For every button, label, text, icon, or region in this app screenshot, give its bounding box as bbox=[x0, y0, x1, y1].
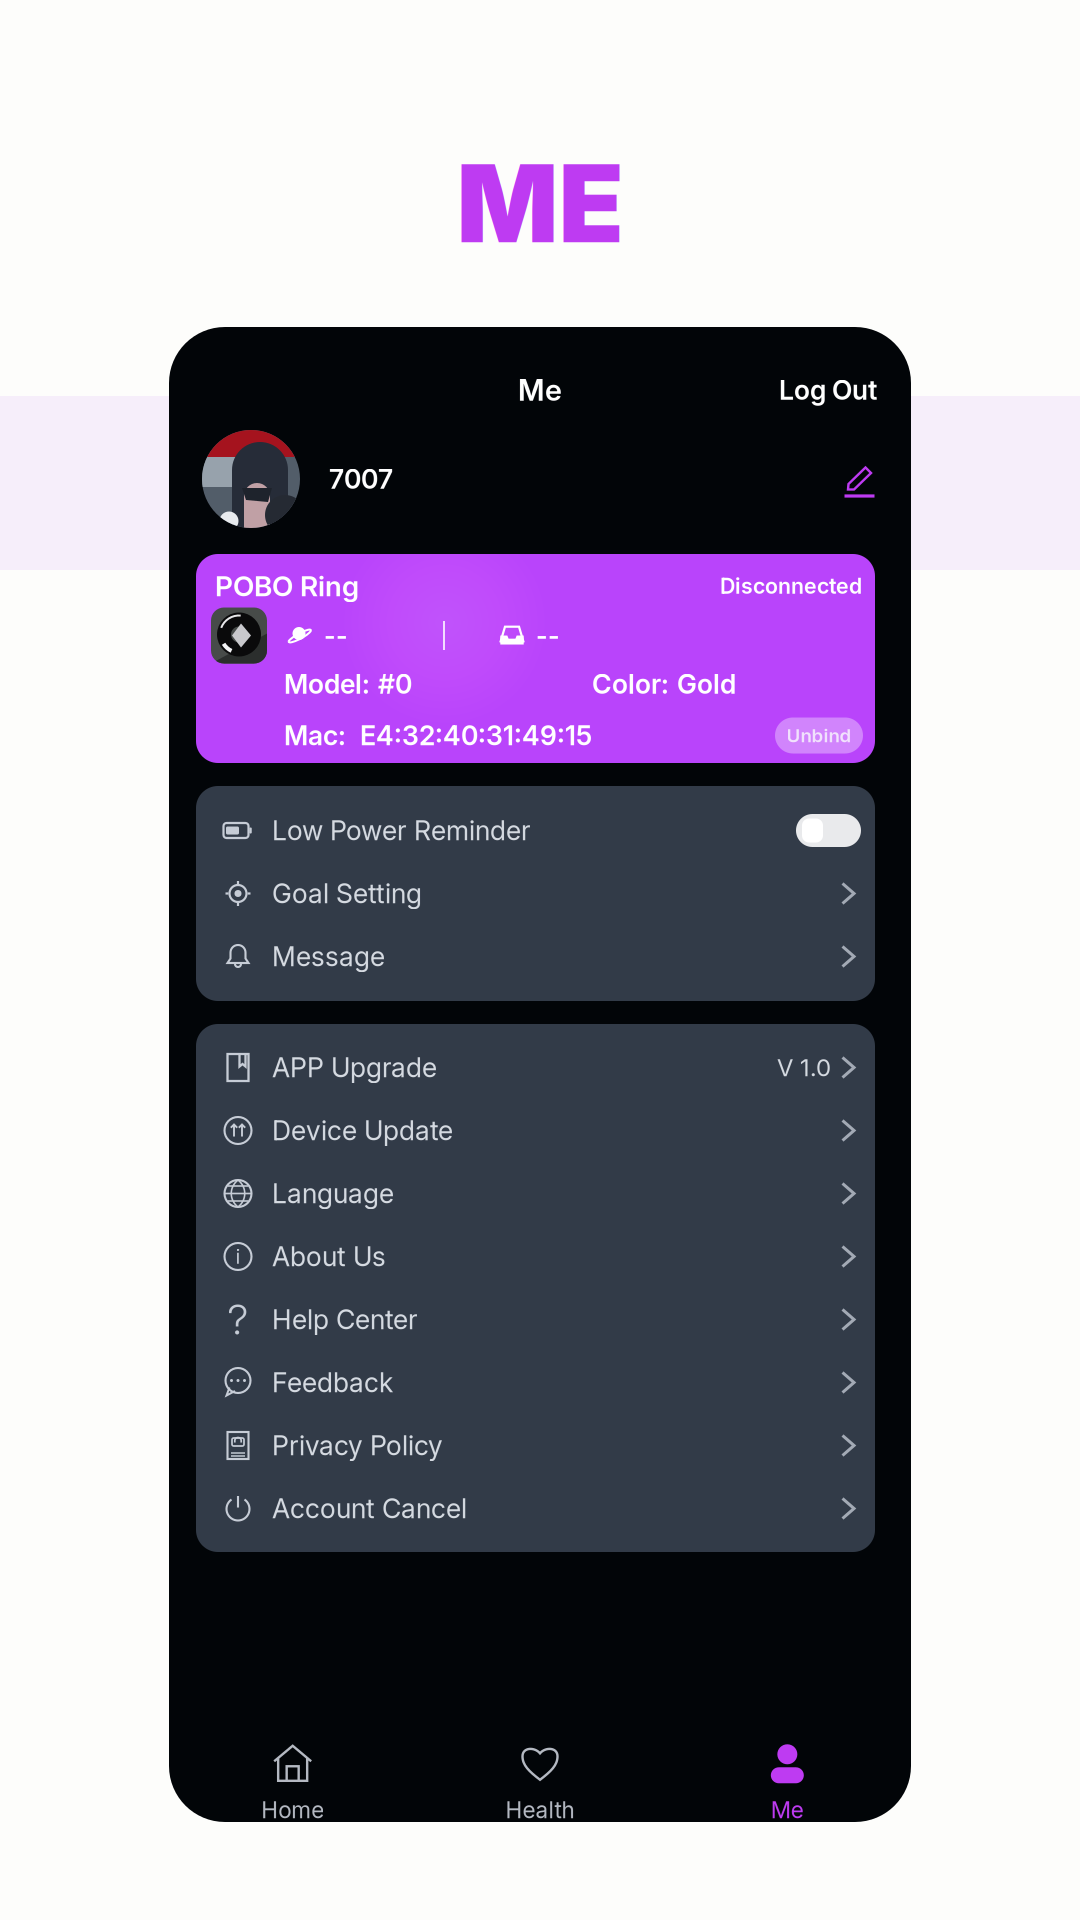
button[interactable]: Home bbox=[169, 1747, 416, 1821]
staticText: V 1.0 bbox=[777, 1053, 831, 1082]
button[interactable]: i bbox=[196, 1225, 875, 1288]
staticText: Message bbox=[272, 940, 385, 973]
staticText: Account Cancel bbox=[272, 1492, 467, 1525]
staticText: About Us bbox=[272, 1240, 386, 1273]
staticText: E4:32:40:31:49:15 bbox=[360, 719, 592, 752]
staticText: Log Out bbox=[779, 374, 877, 406]
staticText: Goal Setting bbox=[272, 877, 422, 910]
staticText: Feedback bbox=[272, 1366, 393, 1399]
staticText: -- bbox=[536, 620, 560, 651]
staticText: Unbind bbox=[786, 724, 851, 747]
button[interactable]: Language bbox=[196, 1162, 875, 1225]
button[interactable]: Privacy Policy bbox=[196, 1414, 875, 1477]
button[interactable]: APP Upgrade bbox=[196, 1036, 875, 1099]
button[interactable]: Log Out bbox=[771, 366, 885, 414]
staticText: Gold bbox=[677, 668, 736, 700]
staticText: APP Upgrade bbox=[272, 1051, 437, 1084]
staticText: ? bbox=[227, 1294, 248, 1344]
staticText: Disconnected bbox=[720, 573, 862, 599]
staticText: ME bbox=[456, 139, 623, 268]
button[interactable]: Edit profile bbox=[844, 459, 875, 498]
staticText: 7007 bbox=[329, 463, 393, 495]
staticText: Privacy Policy bbox=[272, 1429, 443, 1462]
button[interactable]: Account Cancel bbox=[196, 1477, 875, 1540]
button[interactable]: ? bbox=[196, 1288, 875, 1351]
staticText: Device Update bbox=[272, 1114, 453, 1147]
staticText: Model: bbox=[284, 668, 370, 700]
button[interactable]: Message bbox=[196, 925, 875, 988]
staticText: Me bbox=[771, 1796, 804, 1824]
staticText: Language bbox=[272, 1177, 394, 1210]
staticText: Home bbox=[261, 1796, 324, 1824]
staticText: Health bbox=[505, 1796, 574, 1824]
staticText: Low Power Reminder bbox=[272, 814, 531, 847]
staticText: #0 bbox=[378, 668, 412, 700]
staticText: Me bbox=[518, 372, 562, 408]
button[interactable]: Feedback bbox=[196, 1351, 875, 1414]
staticText: Color: bbox=[592, 668, 669, 700]
button[interactable]: Me bbox=[664, 1747, 911, 1821]
staticText: Mac: bbox=[284, 719, 346, 752]
button[interactable]: Goal Setting bbox=[196, 862, 875, 925]
staticText: POBO Ring bbox=[215, 569, 359, 603]
button[interactable]: Low Power Reminder bbox=[196, 799, 875, 862]
staticText: i bbox=[235, 1244, 240, 1269]
button[interactable]: Unbind bbox=[775, 717, 863, 753]
button[interactable]: Device Update bbox=[196, 1099, 875, 1162]
staticText: -- bbox=[324, 620, 348, 651]
button[interactable]: Health bbox=[416, 1747, 664, 1821]
staticText: Help Center bbox=[272, 1303, 418, 1336]
